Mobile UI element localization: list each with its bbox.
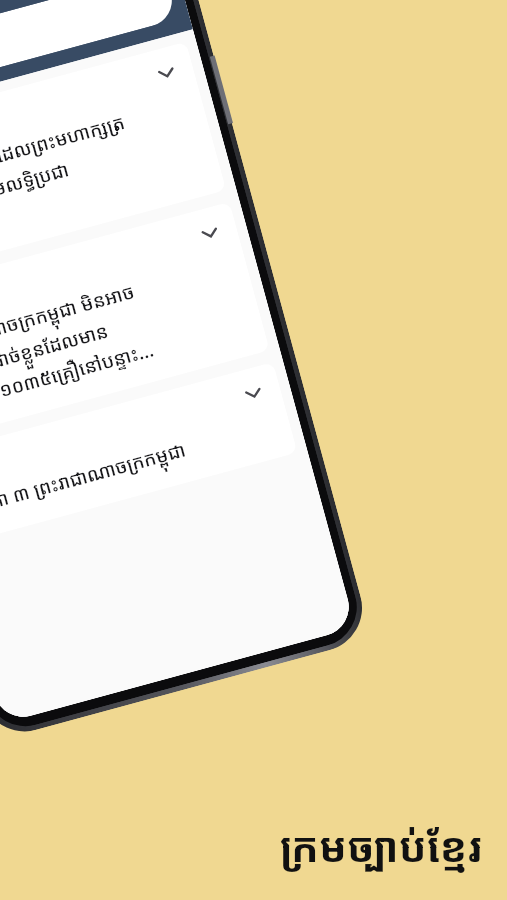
button[interactable]: Expand [0, 41, 226, 281]
button[interactable]: Expand [0, 362, 298, 543]
staticText: ព្រះរាជាណាចក្រកម្ពុជា មិនអាច បែងចែកដាច់ខ… [0, 277, 157, 418]
staticText: ក្រមច្បាប់ខ្មែរ [280, 818, 483, 874]
other: Expand [237, 377, 269, 409]
button[interactable]: Search Here [0, 0, 178, 109]
other: Expand [150, 57, 182, 89]
staticText: ព្រះរាជាណាចក្រ ដែលព្រះមហាក្សត្រ គ្រងរាជ្… [0, 109, 144, 258]
other: Expand [194, 217, 226, 249]
button[interactable]: Expand [0, 202, 270, 441]
staticText: មាត្រា ៣ ព្រះរាជាណាចក្រកម្ពុជា [0, 436, 189, 520]
